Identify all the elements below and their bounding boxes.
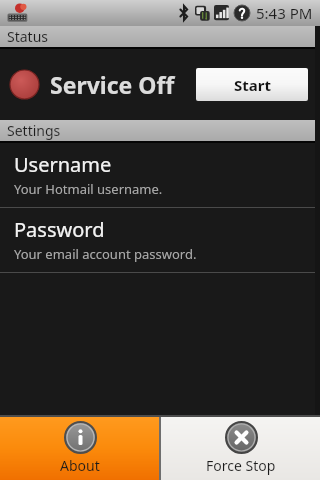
other: Force Stop: [226, 422, 257, 453]
staticText: Settings: [7, 121, 61, 140]
staticText: Username: [14, 151, 112, 178]
staticText: Service Off: [50, 69, 175, 100]
staticText: Start: [234, 75, 271, 95]
staticText: Your Hotmail username.: [14, 180, 163, 198]
staticText: Status: [7, 27, 49, 46]
button[interactable]: About: [0, 417, 159, 480]
button[interactable]: Force Stop: [161, 417, 320, 480]
button[interactable]: Password: [0, 208, 320, 272]
staticText: Password: [14, 216, 105, 243]
staticText: Your email account password.: [14, 245, 197, 263]
button[interactable]: Username: [0, 143, 320, 207]
button[interactable]: Start: [196, 68, 308, 101]
staticText: About: [60, 456, 100, 475]
staticText: Force Stop: [206, 456, 276, 475]
other: About: [65, 422, 96, 453]
staticText: 5:43 PM: [256, 3, 313, 23]
